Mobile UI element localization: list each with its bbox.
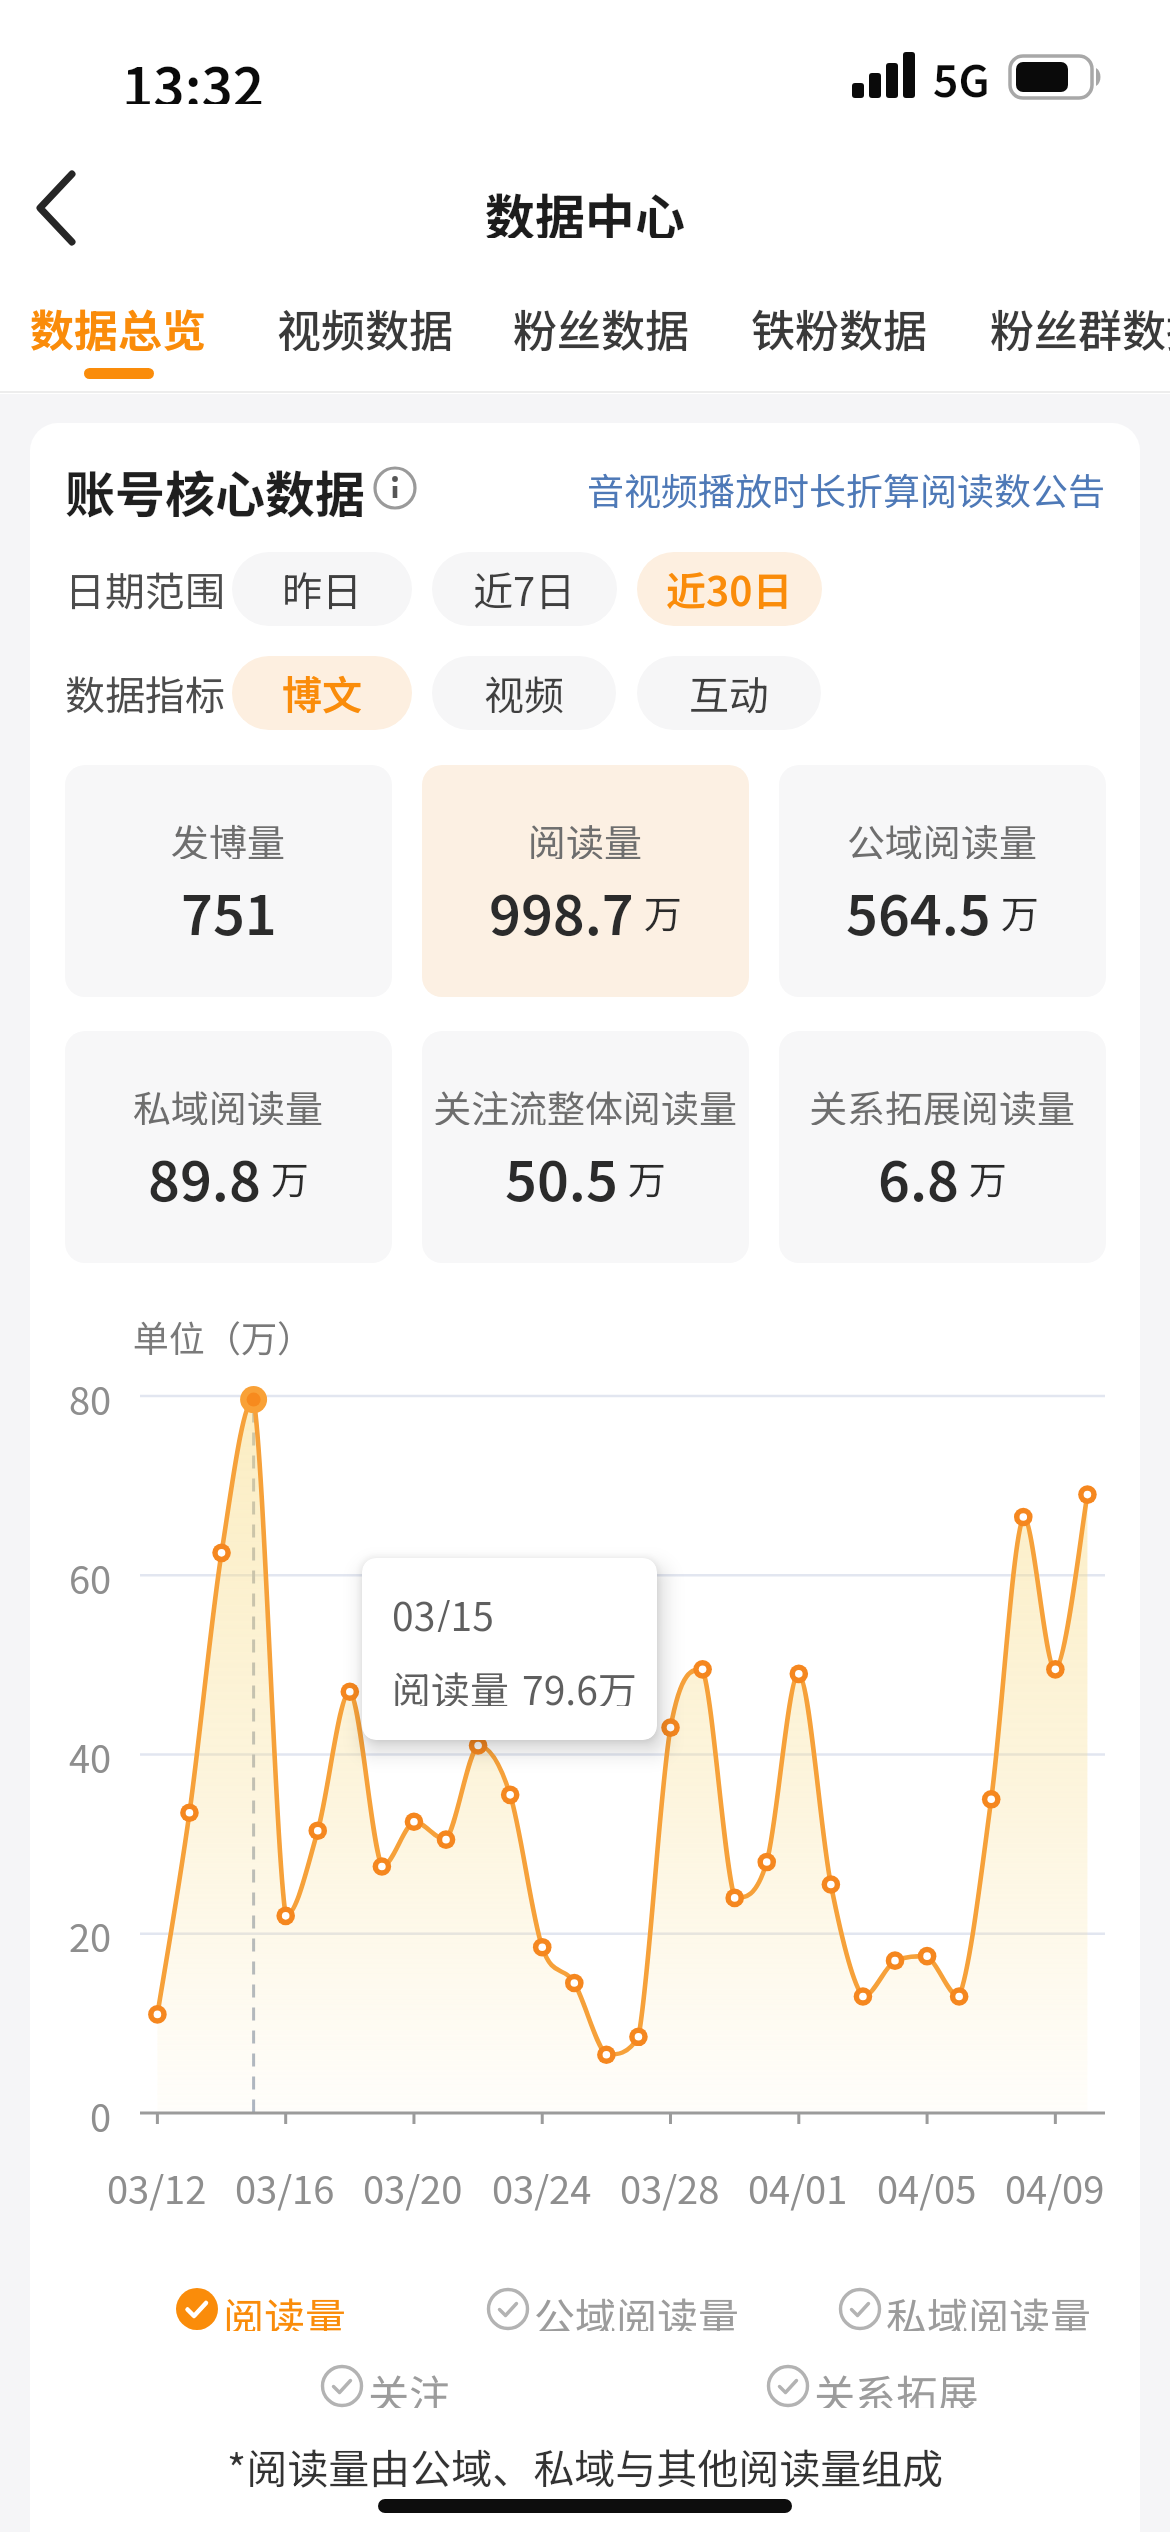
staticText: 0 (90, 2088, 112, 2138)
button[interactable]: 私域阅读量 (838, 2285, 1091, 2331)
button[interactable]: 阅读量 (175, 2285, 346, 2331)
button[interactable]: 关注流整体阅读量 (422, 1031, 749, 1263)
staticText: 03/16 (235, 2160, 335, 2212)
staticText: 50.5 (505, 1137, 618, 1217)
staticText: 998.7 (489, 871, 634, 951)
staticText: 万 (1001, 884, 1040, 939)
button[interactable]: 铁粉数据 (744, 296, 934, 358)
button[interactable]: 关注 (320, 2362, 450, 2408)
staticText: 铁粉数据 (751, 296, 927, 358)
staticText: 5G (933, 46, 990, 104)
button[interactable]: 昨日 (232, 552, 412, 626)
staticText: 89.8 (148, 1137, 261, 1217)
staticText: *阅读量由公域、私域与其他阅读量组成 (227, 2436, 944, 2490)
staticText: 私域阅读量 (886, 2285, 1091, 2331)
staticText: 私域阅读量 (133, 1079, 324, 1125)
button[interactable]: 私域阅读量 (65, 1031, 392, 1263)
staticText: 6.8 (878, 1137, 959, 1217)
staticText: 关系拓展阅读量 (809, 1079, 1076, 1125)
staticText: 博文 (282, 664, 362, 722)
button[interactable]: 粉丝数据 (506, 296, 696, 358)
staticText: 40 (69, 1729, 112, 1779)
staticText: 音视频播放时长折算阅读数公告 (587, 462, 1105, 514)
staticText: 万 (969, 1150, 1008, 1205)
staticText: 03/12 (107, 2160, 207, 2212)
staticText: 万 (271, 1150, 310, 1205)
button[interactable]: 阅读量 (422, 765, 749, 997)
button[interactable]: 公域阅读量 (486, 2285, 739, 2331)
staticText: 80 (69, 1371, 112, 1421)
staticText: 564.5 (846, 871, 991, 951)
staticText: 昨日 (282, 560, 362, 618)
button[interactable]: 音视频播放时长折算阅读数公告 (585, 462, 1105, 514)
button[interactable]: 近30日 (637, 552, 822, 626)
staticText: 粉丝数据 (513, 296, 689, 358)
staticText: 万 (628, 1150, 667, 1205)
staticText: 阅读量 (392, 1660, 510, 1706)
staticText: 13:32 (122, 44, 265, 104)
button[interactable]: 博文 (232, 656, 412, 730)
button[interactable]: 视频数据 (270, 296, 460, 358)
staticText: 视频数据 (277, 296, 453, 358)
staticText: 03/24 (492, 2160, 592, 2212)
staticText: 关注 (368, 2362, 450, 2408)
button[interactable]: 互动 (637, 656, 821, 730)
staticText: 日期范围 (65, 560, 225, 618)
staticText: 20 (69, 1908, 112, 1958)
staticText: 04/01 (748, 2160, 848, 2212)
staticText: 近30日 (666, 560, 793, 618)
staticText: 03/15 (392, 1586, 494, 1632)
button[interactable]: 关系拓展阅读量 (779, 1031, 1106, 1263)
staticText: 关注流整体阅读量 (433, 1079, 738, 1125)
staticText: 互动 (689, 664, 769, 722)
button[interactable] (20, 166, 100, 250)
button[interactable]: 数据总览 (23, 296, 213, 358)
staticText: 账号核心数据 (65, 455, 365, 521)
staticText: 60 (69, 1550, 112, 1600)
button[interactable]: 近7日 (432, 552, 617, 626)
staticText: 视频 (484, 664, 564, 722)
staticText: 近7日 (473, 560, 576, 618)
staticText: 数据总览 (30, 296, 206, 358)
staticText: 发博量 (171, 813, 286, 859)
staticText: 阅读量 (528, 813, 643, 859)
staticText: 关系拓展 (814, 2362, 978, 2408)
staticText: 751 (181, 871, 277, 951)
staticText: 03/20 (363, 2160, 463, 2212)
staticText: 04/09 (1005, 2160, 1105, 2212)
button[interactable]: 粉丝群数据 (990, 296, 1170, 358)
staticText: 粉丝群数据 (990, 296, 1170, 358)
staticText: 03/28 (620, 2160, 720, 2212)
staticText: 04/05 (877, 2160, 977, 2212)
staticText: 阅读量 (223, 2285, 346, 2331)
staticText: 数据中心 (485, 178, 685, 238)
staticText: 数据指标 (65, 664, 225, 722)
staticText: 万 (644, 884, 683, 939)
button[interactable]: 公域阅读量 (779, 765, 1106, 997)
staticText: 公域阅读量 (847, 813, 1038, 859)
button[interactable]: 发博量 (65, 765, 392, 997)
staticText: 79.6万 (522, 1660, 637, 1706)
button[interactable]: 关系拓展 (766, 2362, 978, 2408)
staticText: 单位（万） (133, 1310, 314, 1360)
button[interactable]: 视频 (432, 656, 616, 730)
staticText: 公域阅读量 (534, 2285, 739, 2331)
